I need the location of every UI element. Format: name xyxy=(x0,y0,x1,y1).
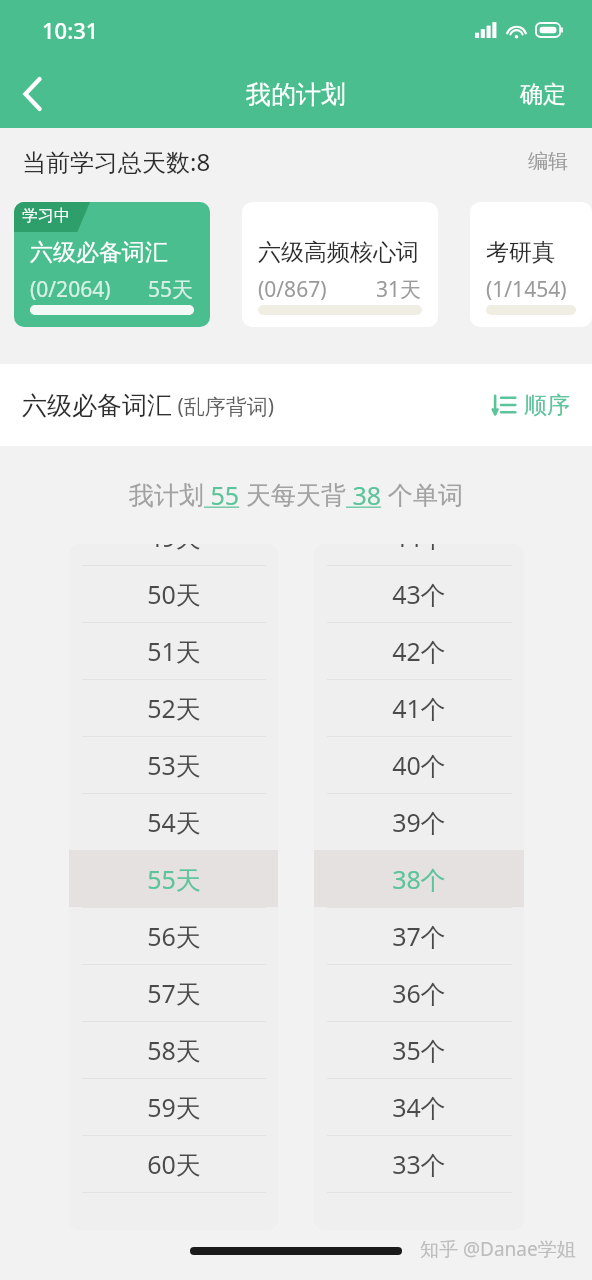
button[interactable]: 33个 xyxy=(314,1135,524,1192)
staticText: 33个 xyxy=(392,1147,446,1181)
button[interactable]: 56天 xyxy=(69,907,278,964)
button[interactable]: 49天 xyxy=(69,544,278,565)
staticText: 34个 xyxy=(392,1090,446,1124)
button[interactable]: 61天 xyxy=(69,1192,278,1194)
staticText: 天每天背 xyxy=(246,480,346,511)
staticText: 六级高频核心词汇 xyxy=(258,238,422,267)
staticText: 36个 xyxy=(392,976,446,1010)
button[interactable]: 60天 xyxy=(69,1135,278,1192)
staticText: 42个 xyxy=(392,634,446,668)
button[interactable]: 42个 xyxy=(314,622,524,679)
staticText: 当前学习总天数:8 xyxy=(22,145,211,178)
staticText: 40个 xyxy=(392,748,446,782)
button[interactable]: 34个 xyxy=(314,1078,524,1135)
staticText: 32个 xyxy=(392,1192,446,1194)
button[interactable]: 59天 xyxy=(69,1078,278,1135)
staticText: 六级必备词汇 xyxy=(30,238,168,267)
button[interactable]: 58天 xyxy=(69,1021,278,1078)
staticText: (乱序背词) xyxy=(172,392,275,421)
staticText: 个单词 xyxy=(388,480,463,511)
staticText: 49天 xyxy=(147,544,201,554)
button[interactable]: 51天 xyxy=(69,622,278,679)
staticText: 考研真题中高频 xyxy=(486,238,576,267)
button[interactable]: 40个 xyxy=(314,736,524,793)
button[interactable]: 35个 xyxy=(314,1021,524,1078)
button[interactable]: 39个 xyxy=(314,793,524,850)
staticText: 学习中 xyxy=(22,206,70,226)
staticText: 55 xyxy=(204,478,246,512)
button[interactable]: 54天 xyxy=(69,793,278,850)
button[interactable]: 学习中 xyxy=(14,202,210,327)
button[interactable]: 顺序 xyxy=(470,364,592,446)
button[interactable]: 43个 xyxy=(314,565,524,622)
staticText: 43个 xyxy=(392,577,446,611)
staticText: 六级必备词汇 xyxy=(22,390,172,421)
button[interactable]: 六级高频核心词汇 xyxy=(242,202,438,327)
button[interactable]: 37个 xyxy=(314,907,524,964)
button[interactable]: 确定 xyxy=(494,60,592,128)
staticText: 31天 xyxy=(376,275,422,304)
staticText: 顺序 xyxy=(524,391,570,420)
staticText: 57天 xyxy=(147,976,201,1010)
staticText: 50天 xyxy=(147,577,201,611)
staticText: 10:31 xyxy=(42,15,99,45)
staticText: 55天 xyxy=(148,275,194,304)
staticText: 41个 xyxy=(392,691,446,725)
staticText: 59天 xyxy=(147,1090,201,1124)
staticText: 58天 xyxy=(147,1033,201,1067)
button[interactable]: 编辑 xyxy=(504,128,592,194)
staticText: (0/2064) xyxy=(30,275,111,304)
button[interactable]: 36个 xyxy=(314,964,524,1021)
staticText: 51天 xyxy=(147,634,201,668)
staticText: 编辑 xyxy=(528,149,568,174)
button[interactable]: 44个 xyxy=(314,544,524,565)
staticText: 38 xyxy=(346,478,388,512)
button[interactable]: 55天 xyxy=(69,850,278,907)
staticText: 37个 xyxy=(392,919,446,953)
button[interactable]: 32个 xyxy=(314,1192,524,1194)
button[interactable]: 41个 xyxy=(314,679,524,736)
staticText: 60天 xyxy=(147,1147,201,1181)
staticText: (1/1454) xyxy=(486,275,567,304)
staticText: 38个 xyxy=(392,862,446,896)
staticText: 39个 xyxy=(392,805,446,839)
staticText: 55天 xyxy=(147,862,201,896)
button[interactable]: 52天 xyxy=(69,679,278,736)
staticText: 35个 xyxy=(392,1033,446,1067)
button[interactable]: 50天 xyxy=(69,565,278,622)
button[interactable]: 考研真题中高频 xyxy=(470,202,592,327)
staticText: 52天 xyxy=(147,691,201,725)
button[interactable]: 38个 xyxy=(314,850,524,907)
staticText: 54天 xyxy=(147,805,201,839)
staticText: 确定 xyxy=(520,80,566,109)
staticText: 我计划 xyxy=(129,480,204,511)
staticText: 44个 xyxy=(392,544,446,554)
staticText: 知乎 @Danae学姐 xyxy=(420,1236,576,1262)
button[interactable]: 53天 xyxy=(69,736,278,793)
staticText: 56天 xyxy=(147,919,201,953)
staticText: 61天 xyxy=(147,1192,201,1194)
staticText: 我的计划 xyxy=(246,79,346,110)
staticText: (0/867) xyxy=(258,275,327,304)
button[interactable]: 57天 xyxy=(69,964,278,1021)
button[interactable]: Back xyxy=(0,60,64,128)
staticText: 53天 xyxy=(147,748,201,782)
